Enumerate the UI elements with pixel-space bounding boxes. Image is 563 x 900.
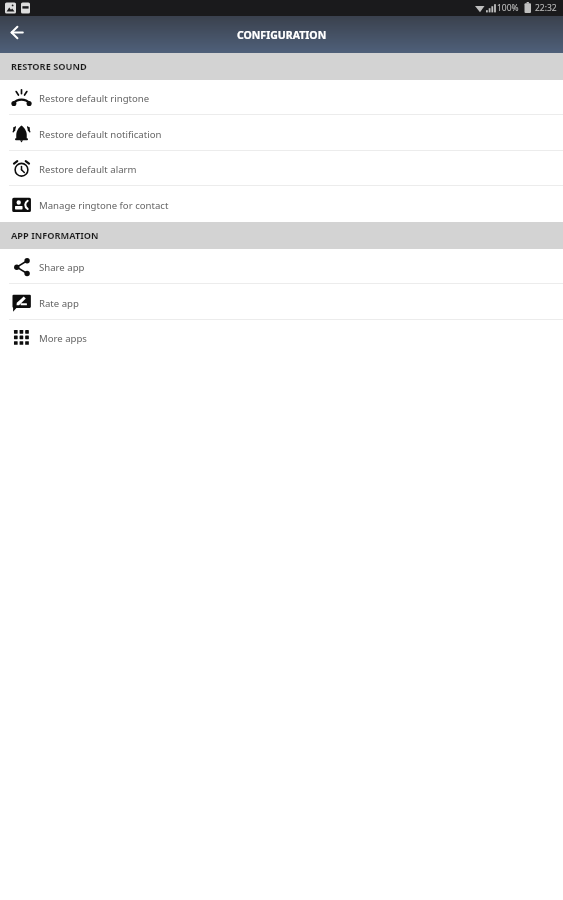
button[interactable]: Restore default alarm — [0, 151, 563, 186]
button[interactable]: More apps — [0, 320, 563, 355]
staticText: Restore default alarm — [39, 163, 137, 176]
staticText: Manage ringtone for contact — [39, 199, 169, 212]
staticText: Restore default notification — [39, 128, 162, 141]
button[interactable]: Restore default ringtone — [0, 80, 563, 115]
button[interactable]: Restore default notification — [0, 115, 563, 151]
staticText: Restore default ringtone — [39, 92, 150, 105]
staticText: RESTORE SOUND — [11, 60, 87, 73]
staticText: 100% — [497, 2, 519, 14]
staticText: More apps — [39, 332, 87, 345]
staticText: Share app — [39, 261, 85, 274]
button[interactable]: Manage ringtone for contact — [0, 186, 563, 222]
staticText: APP INFORMATION — [11, 229, 99, 242]
button[interactable]: Rate app — [0, 284, 563, 320]
staticText: CONFIGURATION — [237, 28, 327, 42]
staticText: 22:32 — [535, 2, 557, 14]
button[interactable]: Back — [5, 23, 29, 47]
staticText: Rate app — [39, 297, 79, 310]
button[interactable]: Share app — [0, 249, 563, 284]
